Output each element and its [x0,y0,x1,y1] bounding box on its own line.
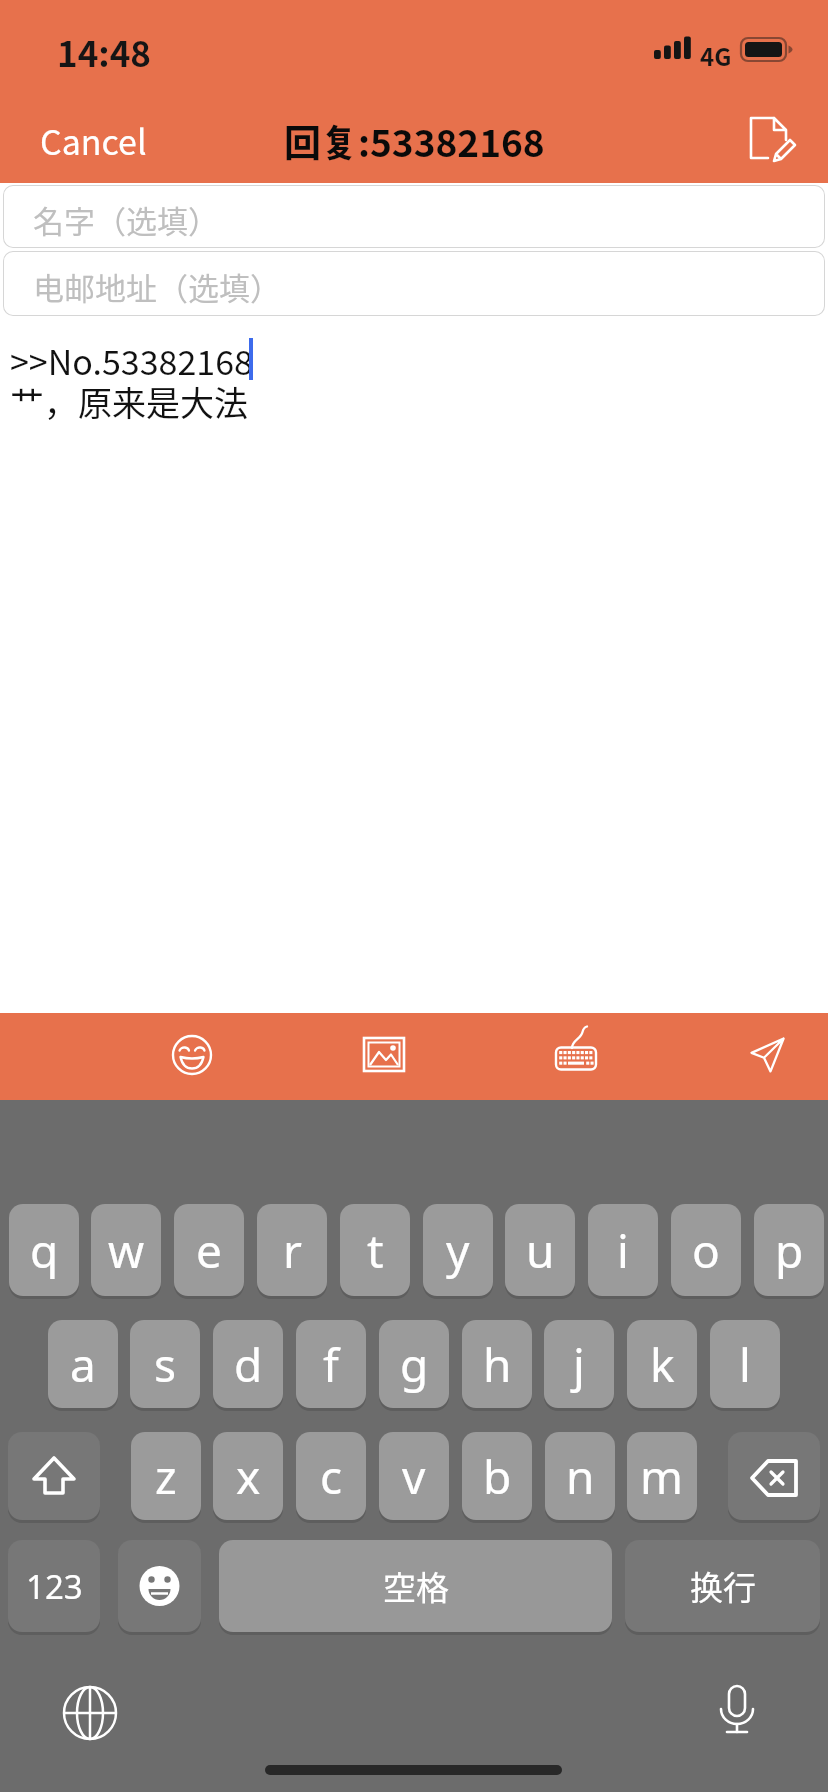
staticText: 艹，原来是大法 [10,377,248,426]
staticText: j [573,1333,585,1396]
button[interactable] [58,1681,122,1745]
staticText: a [70,1333,96,1396]
button[interactable]: i [588,1204,658,1296]
staticText: 空格 [383,1562,449,1610]
button[interactable]: q [9,1204,79,1296]
staticText: c [320,1445,343,1508]
button[interactable]: n [545,1432,615,1520]
button[interactable]: d [213,1320,283,1408]
button[interactable]: m [627,1432,697,1520]
button[interactable] [8,1432,100,1520]
button[interactable]: 换行 [625,1540,820,1632]
staticText: 电邮地址（选填） [33,264,281,309]
staticText: m [640,1445,684,1508]
button[interactable]: c [296,1432,366,1520]
button[interactable]: g [379,1320,449,1408]
staticText: d [234,1333,263,1396]
button[interactable] [735,1018,799,1082]
staticText: v [402,1445,426,1508]
staticText: 123 [26,1564,83,1609]
button[interactable]: y [423,1204,493,1296]
button[interactable] [118,1540,201,1632]
button[interactable] [707,1680,767,1740]
button[interactable]: l [710,1320,780,1408]
button[interactable]: s [130,1320,200,1408]
staticText: o [692,1219,720,1282]
staticText: 换行 [690,1562,756,1610]
button[interactable]: k [627,1320,697,1408]
staticText: z [155,1445,177,1508]
staticText: h [483,1333,512,1396]
button[interactable]: f [296,1320,366,1408]
staticText: w [108,1219,145,1282]
staticText: 回复:53382168 [284,114,545,168]
button[interactable]: x [213,1432,283,1520]
staticText: Cancel [40,116,147,165]
staticText: q [30,1219,59,1282]
staticText: 名字（选填） [33,197,219,242]
button[interactable]: a [48,1320,118,1408]
staticText: s [154,1333,177,1396]
button[interactable]: p [754,1204,824,1296]
staticText: 14:48 [57,26,151,77]
staticText: e [196,1219,222,1282]
button[interactable] [728,1432,820,1520]
button[interactable]: 123 [8,1540,100,1632]
button[interactable]: r [257,1204,327,1296]
button[interactable]: 空格 [219,1540,612,1632]
staticText: 4G [700,38,732,73]
staticText: >>No.53382168 [10,336,253,385]
button[interactable] [160,1023,224,1087]
staticText: g [400,1333,429,1396]
button[interactable]: b [462,1432,532,1520]
button[interactable] [543,1018,607,1082]
button[interactable]: z [131,1432,201,1520]
staticText: u [526,1219,555,1282]
button[interactable]: h [462,1320,532,1408]
button[interactable] [352,1023,416,1087]
staticText: i [617,1219,629,1282]
staticText: k [650,1333,675,1396]
button[interactable]: t [340,1204,410,1296]
staticText: t [367,1219,384,1282]
staticText: l [739,1333,751,1396]
button[interactable]: o [671,1204,741,1296]
button[interactable]: Cancel [20,108,170,170]
staticText: r [283,1219,302,1282]
button[interactable]: j [544,1320,614,1408]
button[interactable]: e [174,1204,244,1296]
staticText: f [323,1333,339,1396]
button[interactable] [738,106,802,170]
button[interactable]: 电邮地址（选填） [3,251,825,316]
button[interactable]: u [505,1204,575,1296]
button[interactable]: 名字（选填） [3,185,825,248]
staticText: y [446,1219,470,1282]
staticText: b [483,1445,512,1508]
staticText: n [566,1445,595,1508]
staticText: x [236,1445,261,1508]
button[interactable]: v [379,1432,449,1520]
button[interactable]: w [91,1204,161,1296]
staticText: p [775,1219,804,1282]
